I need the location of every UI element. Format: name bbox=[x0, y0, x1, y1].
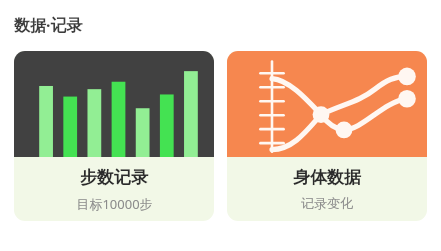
button[interactable]: Body data chart bbox=[227, 51, 427, 221]
staticText: 记录变化 bbox=[301, 195, 353, 211]
other: Body data chart bbox=[227, 51, 427, 157]
staticText: 步数记录 bbox=[80, 167, 148, 188]
staticText: 目标10000步 bbox=[76, 195, 153, 213]
staticText: 身体数据 bbox=[293, 167, 361, 188]
staticText: 数据·记录 bbox=[14, 14, 83, 36]
button[interactable]: 步数记录 bbox=[14, 51, 214, 221]
